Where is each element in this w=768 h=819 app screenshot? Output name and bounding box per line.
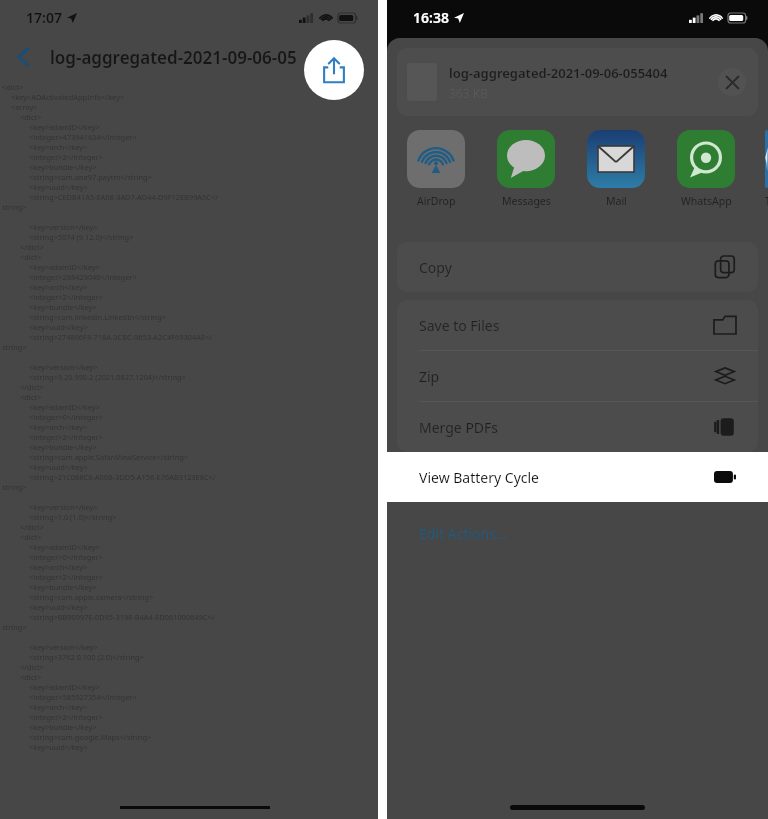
- button[interactable]: Te: [765, 130, 768, 208]
- staticText: <string>BB90997E-0D95-3198-B4A4-8D061000…: [29, 612, 215, 622]
- staticText: string>: [2, 202, 27, 212]
- staticText: <string>274866F8-718A-3CBC-9653-A2C4F693…: [29, 332, 213, 342]
- button[interactable]: log-aggregated-2021-09-06-055404: [397, 48, 758, 116]
- staticText: AirDrop: [417, 194, 456, 208]
- staticText: <key>bundle</key>: [29, 582, 97, 592]
- staticText: log-aggregated-2021-09-06-055404: [449, 64, 668, 82]
- staticText: </dict>: [20, 522, 44, 532]
- staticText: </dict>: [20, 662, 44, 672]
- staticText: <string>CEDB41A5-EA08-3AD7-AD44-D9F12EB9…: [29, 192, 218, 202]
- button[interactable]: WhatsApp: [675, 130, 737, 208]
- staticText: string>: [2, 482, 27, 492]
- button[interactable]: Save to Files: [397, 300, 758, 350]
- staticText: <key>arch</key>: [29, 422, 88, 432]
- staticText: <string>com.google.Maps</string>: [29, 732, 152, 742]
- staticText: Copy: [419, 258, 452, 277]
- staticText: <key>version</key>: [29, 502, 98, 512]
- staticText: <key>uuid</key>: [29, 742, 88, 752]
- staticText: <key>arch</key>: [29, 562, 88, 572]
- staticText: Messages: [502, 194, 551, 208]
- staticText: <dict>: [20, 532, 42, 542]
- staticText: Te: [765, 194, 768, 208]
- staticText: <key>ADActivatedAppInfo</key>: [11, 92, 125, 102]
- staticText: <integer>0</integer>: [29, 412, 104, 422]
- staticText: <integer>0</integer>: [29, 552, 104, 562]
- staticText: <array>: [11, 102, 38, 112]
- staticText: <integer>2</integer>: [29, 712, 104, 722]
- staticText: Merge PDFs: [419, 418, 499, 437]
- staticText: <dict>: [20, 672, 42, 682]
- staticText: <integer>585027354</integer>: [29, 692, 137, 702]
- staticText: <integer>288429040</integer>: [29, 272, 137, 282]
- staticText: <key>arch</key>: [29, 702, 88, 712]
- staticText: <key>adamID</key>: [29, 402, 100, 412]
- staticText: <key>uuid</key>: [29, 322, 88, 332]
- staticText: WhatsApp: [681, 194, 732, 208]
- staticText: <string>21C088C6-A06B-3DD5-A156-E76AB312…: [29, 472, 216, 482]
- staticText: <integer>2</integer>: [29, 432, 104, 442]
- button[interactable]: AirDrop: [405, 130, 467, 208]
- button[interactable]: Merge PDFs: [397, 402, 758, 452]
- staticText: <key>arch</key>: [29, 142, 88, 152]
- staticText: </dict>: [20, 382, 44, 392]
- button[interactable]: View Battery Cycle: [387, 452, 768, 502]
- staticText: 363 KB: [449, 85, 488, 101]
- staticText: <integer>2</integer>: [29, 572, 104, 582]
- staticText: <string>com.apple.SafariViewService</str…: [29, 452, 189, 462]
- staticText: <string>9.20.990.2 (2021.0827.1204)</str…: [29, 372, 186, 382]
- staticText: <dict>: [20, 112, 42, 122]
- staticText: <string>1.0 (1.0)</string>: [29, 512, 117, 522]
- button[interactable]: Edit Actions...: [387, 516, 768, 550]
- staticText: <key>bundle</key>: [29, 442, 97, 452]
- staticText: <dict>: [20, 392, 42, 402]
- staticText: <string>com.apple.camera</string>: [29, 592, 154, 602]
- staticText: <key>version</key>: [29, 222, 98, 232]
- button[interactable]: Messages: [495, 130, 557, 208]
- staticText: <key>bundle</key>: [29, 722, 97, 732]
- staticText: <key>arch</key>: [29, 282, 88, 292]
- staticText: <key>uuid</key>: [29, 462, 88, 472]
- button[interactable]: Copy: [397, 242, 758, 292]
- staticText: <key>version</key>: [29, 642, 98, 652]
- staticText: Save to Files: [419, 316, 500, 335]
- staticText: <key>adamID</key>: [29, 262, 100, 272]
- staticText: 16:38: [413, 8, 449, 27]
- staticText: <key>bundle</key>: [29, 162, 97, 172]
- staticText: <integer>2</integer>: [29, 292, 104, 302]
- staticText: <integer>473941634</integer>: [29, 132, 137, 142]
- staticText: <key>uuid</key>: [29, 182, 88, 192]
- staticText: <integer>2</integer>: [29, 152, 104, 162]
- staticText: <string>com.linkedin.LinkedIn</string>: [29, 312, 166, 322]
- staticText: <key>uuid</key>: [29, 602, 88, 612]
- button[interactable]: Back: [4, 37, 44, 77]
- staticText: string>: [2, 622, 27, 632]
- button[interactable]: Zip: [397, 351, 758, 401]
- button[interactable]: Close: [718, 68, 746, 96]
- staticText: <key>bundle</key>: [29, 302, 97, 312]
- button[interactable]: Mail: [585, 130, 647, 208]
- staticText: <key>version</key>: [29, 362, 98, 372]
- staticText: log-aggregated-2021-09-06-05: [50, 46, 297, 69]
- staticText: Mail: [606, 194, 627, 208]
- staticText: <key>adamID</key>: [29, 542, 100, 552]
- staticText: 17:07: [26, 8, 62, 27]
- staticText: <string>3762.0.100 (2.0)</string>: [29, 652, 144, 662]
- button[interactable]: Share: [304, 40, 364, 100]
- staticText: <key>adamID</key>: [29, 122, 100, 132]
- staticText: View Battery Cycle: [419, 468, 540, 487]
- staticText: <string>com.one97.paytm</string>: [29, 172, 152, 182]
- staticText: <dict>: [20, 252, 42, 262]
- staticText: <string>5074 (9.12.0)</string>: [29, 232, 134, 242]
- staticText: Edit Actions...: [419, 524, 508, 543]
- staticText: <key>adamID</key>: [29, 682, 100, 692]
- staticText: </dict>: [20, 242, 44, 252]
- staticText: string>: [2, 342, 27, 352]
- staticText: Zip: [419, 367, 440, 386]
- staticText: <dict>: [2, 82, 24, 92]
